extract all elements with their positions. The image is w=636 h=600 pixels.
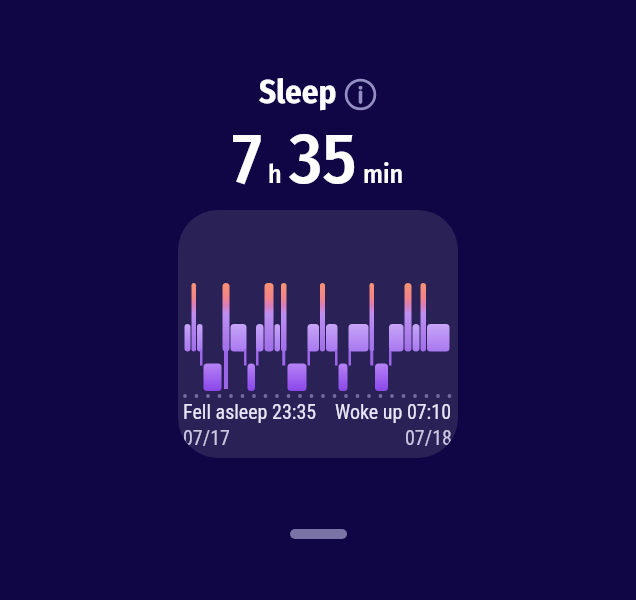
- staticText: 35: [289, 116, 357, 202]
- button[interactable]: [290, 529, 347, 539]
- staticText: 7: [232, 116, 262, 202]
- staticText: Fell asleep 23:35: [183, 400, 317, 423]
- staticText: Sleep: [259, 72, 337, 112]
- staticText: h: [268, 159, 282, 190]
- staticText: min: [363, 159, 404, 190]
- staticText: 07/17: [183, 426, 230, 449]
- staticText: Woke up 07:10: [335, 400, 452, 423]
- button[interactable]: [344, 78, 377, 111]
- button[interactable]: Fell asleep 23:35: [178, 210, 458, 458]
- staticText: 07/18: [405, 426, 452, 449]
